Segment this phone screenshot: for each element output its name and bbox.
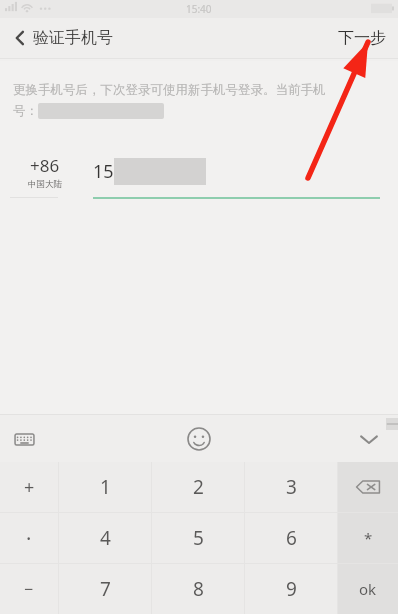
button[interactable]: 7 — [59, 564, 151, 614]
button[interactable]: 6 — [245, 513, 337, 563]
staticText: 中国大陆 — [28, 179, 62, 190]
staticText: 更换手机号后，下次登录可使用新手机号登录。当前手机 — [13, 82, 326, 98]
button[interactable]: Emoji — [179, 419, 219, 459]
button[interactable]: · — [0, 513, 58, 563]
staticText: 下一步 — [338, 28, 386, 48]
staticText: 号： — [13, 103, 38, 119]
button[interactable]: 9 — [245, 564, 337, 614]
button[interactable]: − — [0, 564, 58, 614]
button[interactable]: ok — [338, 564, 398, 614]
button[interactable]: 3 — [245, 462, 337, 512]
staticText: 1 — [100, 474, 111, 500]
button[interactable]: 8 — [152, 564, 244, 614]
button[interactable]: Back — [3, 21, 37, 55]
staticText: + — [24, 475, 35, 500]
staticText: ok — [359, 579, 377, 599]
button[interactable]: 1 — [59, 462, 151, 512]
staticText: 3 — [286, 474, 297, 500]
staticText: +86 — [30, 154, 60, 177]
staticText: 15 — [93, 159, 114, 184]
staticText: 2 — [193, 474, 204, 500]
button[interactable]: Hide keyboard — [350, 420, 388, 458]
staticText: 验证手机号 — [33, 28, 113, 48]
staticText: 15:40 — [186, 2, 212, 16]
staticText: 8 — [193, 576, 204, 602]
staticText: * — [364, 528, 373, 548]
button[interactable]: + — [0, 462, 58, 512]
button[interactable]: Backspace — [338, 462, 398, 512]
staticText: 9 — [286, 576, 297, 602]
staticText: · — [26, 525, 32, 552]
staticText: − — [24, 578, 34, 600]
button[interactable]: * — [338, 513, 398, 563]
staticText: 6 — [286, 525, 297, 551]
staticText: 7 — [100, 576, 111, 602]
staticText: 4 — [100, 525, 111, 551]
button[interactable]: 5 — [152, 513, 244, 563]
button[interactable]: 2 — [152, 462, 244, 512]
staticText: 5 — [193, 525, 204, 551]
button[interactable]: 下一步 — [334, 22, 390, 54]
button[interactable]: Keyboard layout — [6, 421, 42, 457]
button[interactable]: 4 — [59, 513, 151, 563]
